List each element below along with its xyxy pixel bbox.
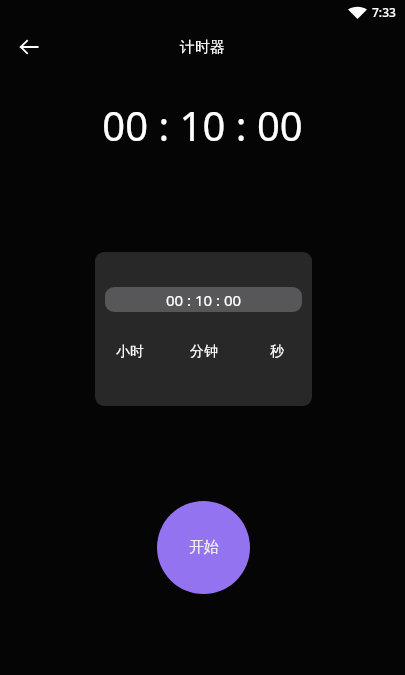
staticText: 小时 bbox=[116, 343, 144, 361]
staticText: 计时器 bbox=[180, 38, 225, 57]
staticText: 开始 bbox=[189, 538, 219, 557]
button[interactable]: 开始 bbox=[157, 501, 250, 594]
button[interactable]: Back bbox=[9, 27, 49, 67]
staticText: 00 : 10 : 00 bbox=[166, 290, 242, 310]
button[interactable]: 秒 bbox=[247, 343, 307, 361]
staticText: 7:33 bbox=[372, 4, 396, 20]
staticText: 分钟 bbox=[190, 343, 218, 361]
button[interactable]: 小时 bbox=[100, 343, 160, 361]
staticText: 00 : 10 : 00 bbox=[102, 98, 303, 152]
button[interactable]: 00 : 10 : 00 bbox=[105, 287, 302, 312]
button[interactable]: 分钟 bbox=[174, 343, 234, 361]
staticText: 秒 bbox=[270, 343, 284, 361]
